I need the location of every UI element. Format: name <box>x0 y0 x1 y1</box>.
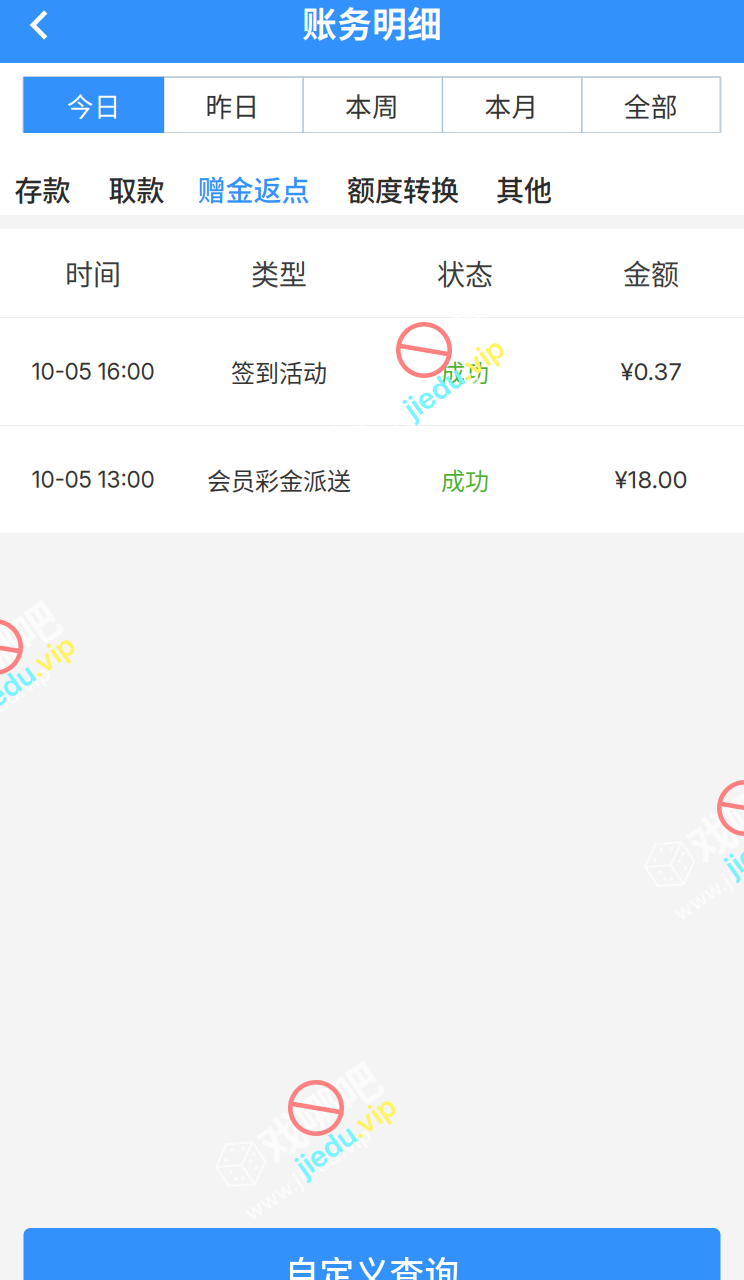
button[interactable]: 今日 <box>23 77 164 133</box>
staticText: 签到活动 <box>231 354 327 389</box>
button[interactable]: 10-05 13:00 <box>0 426 744 533</box>
staticText: 本周 <box>345 86 399 124</box>
staticText: www.jiedu.vip <box>320 398 468 423</box>
button[interactable]: 全部 <box>581 77 720 133</box>
staticText: 戏哪吧 <box>692 790 744 856</box>
staticText: 成功 <box>441 354 489 389</box>
staticText: 成功 <box>441 462 489 497</box>
staticText: www.jiedu.vip <box>0 695 39 720</box>
staticText: 其他 <box>496 169 552 209</box>
button[interactable]: 本月 <box>442 77 581 133</box>
staticText: 全部 <box>624 86 678 124</box>
staticText: 状态 <box>437 253 493 293</box>
staticText: 账务明细 <box>302 0 442 48</box>
staticText: 额度转换 <box>347 169 459 209</box>
staticText: jiedu <box>396 360 462 395</box>
staticText: jiedu <box>288 1118 354 1153</box>
staticText: 戏哪吧 <box>371 332 506 398</box>
button[interactable]: 额度转换 <box>340 172 466 206</box>
button[interactable]: 本周 <box>302 77 442 133</box>
staticText: 时间 <box>65 253 121 293</box>
button[interactable]: 昨日 <box>163 77 302 133</box>
staticText: 存款 <box>14 169 70 209</box>
staticText: 赠金返点 <box>197 169 309 209</box>
button[interactable]: 其他 <box>490 172 558 206</box>
staticText: jiedu <box>717 818 744 853</box>
button[interactable]: 返回 <box>0 0 62 63</box>
staticText: 金额 <box>623 253 679 293</box>
staticText: jiedu <box>0 657 33 692</box>
staticText: 取款 <box>108 169 164 209</box>
staticText: 会员彩金派送 <box>207 462 351 497</box>
button[interactable]: 存款 <box>9 172 76 206</box>
staticText: ¥0.37 <box>620 357 681 386</box>
staticText: 自定义查询 <box>284 1247 459 1280</box>
staticText: 本月 <box>484 86 538 124</box>
staticText: 10-05 13:00 <box>31 466 154 493</box>
staticText: www.jiedu.vip <box>641 856 744 881</box>
staticText: 昨日 <box>206 86 260 124</box>
button[interactable]: 赠金返点 <box>191 172 316 206</box>
staticText: www.jiedu.vip <box>212 1156 360 1181</box>
staticText: .vip <box>462 360 512 395</box>
staticText: 类型 <box>251 253 307 293</box>
staticText: 戏哪吧 <box>0 629 77 695</box>
staticText: 今日 <box>67 86 121 124</box>
staticText: 10-05 16:00 <box>31 358 154 385</box>
button[interactable]: 自定义查询 <box>23 1228 720 1280</box>
button[interactable]: 取款 <box>103 172 170 206</box>
staticText: ¥18.00 <box>614 465 687 494</box>
staticText: .vip <box>354 1118 404 1153</box>
staticText: .vip <box>33 657 83 692</box>
staticText: 戏哪吧 <box>263 1090 398 1156</box>
button[interactable]: 10-05 16:00 <box>0 318 744 425</box>
